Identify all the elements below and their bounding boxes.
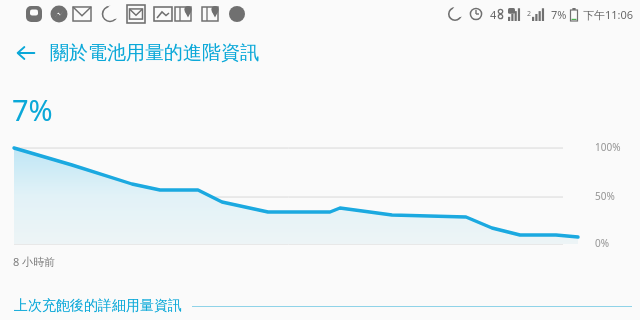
staticText: 下午11:06 (583, 7, 634, 22)
staticText: 上次充飽後的詳細用量資訊 (14, 297, 182, 315)
staticText: 7% (551, 7, 567, 22)
staticText: 關於電池用量的進階資訊 (50, 41, 259, 65)
staticText: 0% (595, 236, 610, 250)
staticText: 2 (527, 9, 532, 19)
staticText: 4 (490, 7, 497, 22)
button[interactable]: 返回 (8, 35, 44, 71)
staticText: 100% (595, 140, 621, 154)
staticText: 8 小時前 (13, 254, 56, 269)
button[interactable]: 上次充飽後的詳細用量資訊 (0, 292, 640, 320)
staticText: 7% (12, 90, 53, 129)
staticText: 50% (595, 189, 615, 203)
